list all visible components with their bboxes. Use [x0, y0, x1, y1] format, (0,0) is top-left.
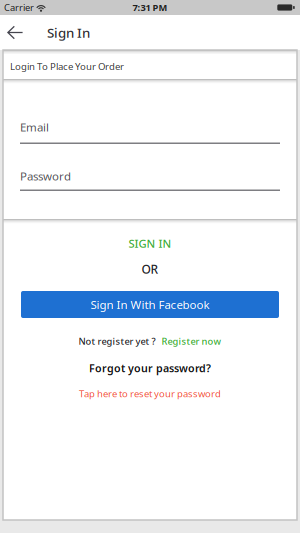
staticText: Login To Place Your Order [10, 60, 124, 73]
staticText: Tap here to reset your password [79, 387, 221, 400]
button[interactable]: Email [3, 121, 297, 144]
staticText: Password [20, 168, 71, 184]
staticText: Register now [161, 335, 221, 348]
button[interactable]: Password [3, 170, 297, 191]
button[interactable] [0, 15, 47, 50]
staticText: Forgot your password? [89, 361, 211, 375]
staticText: Carrier [4, 1, 34, 14]
staticText: Sign In With Facebook [90, 297, 209, 312]
staticText: Not register yet ? [78, 335, 155, 348]
button[interactable]: Tap here to reset your password [79, 388, 221, 398]
button[interactable]: Register now [161, 335, 221, 348]
staticText: Sign In [47, 23, 90, 42]
staticText: Email [20, 119, 49, 135]
staticText: OR [141, 261, 158, 277]
staticText: SIGN IN [128, 236, 171, 251]
button[interactable]: SIGN IN [128, 237, 171, 249]
staticText: 7:31 PM [132, 1, 167, 14]
button[interactable]: Sign In With Facebook [3, 291, 297, 318]
